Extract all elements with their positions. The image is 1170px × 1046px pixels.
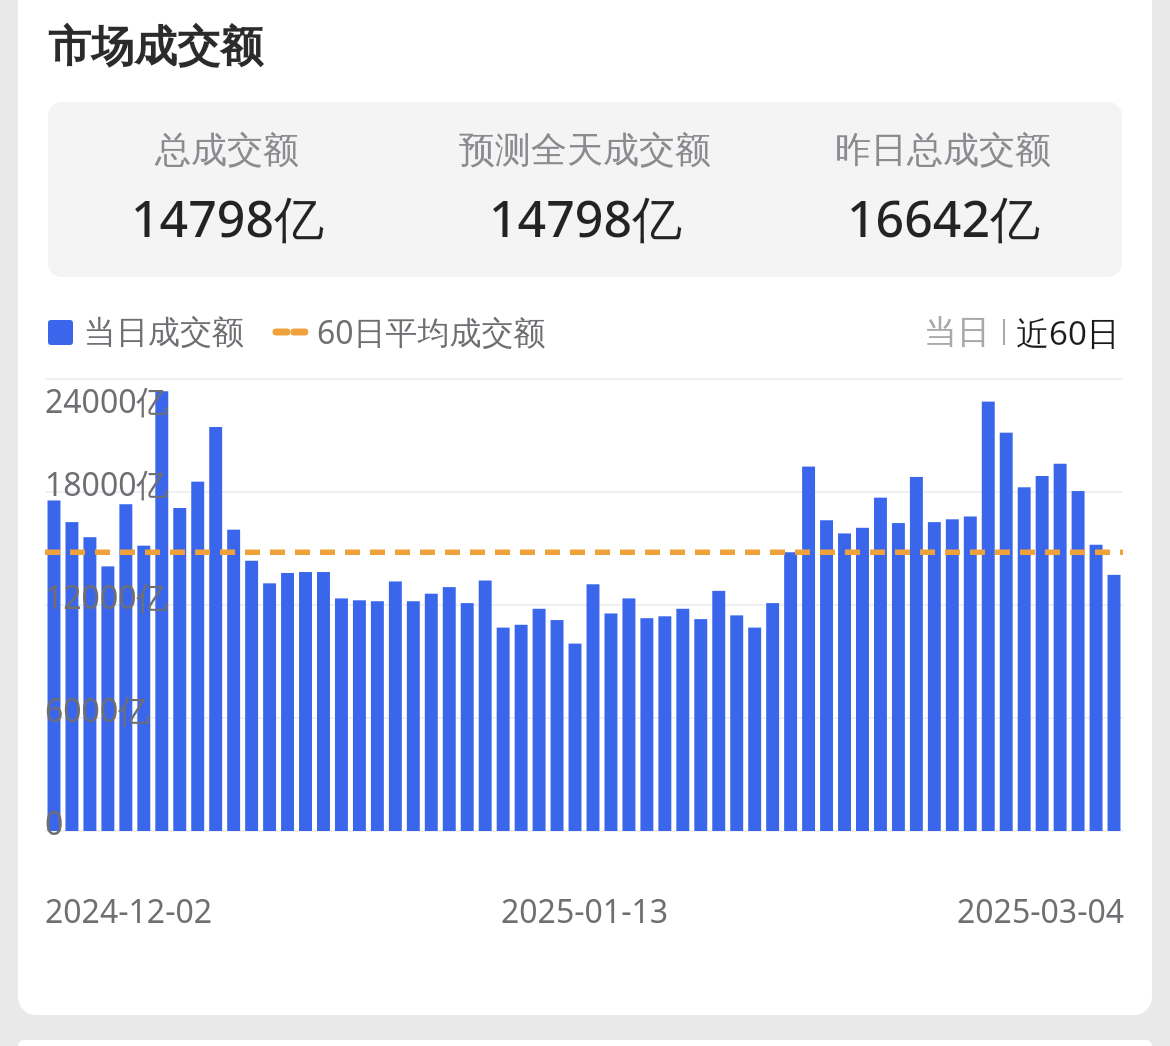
button[interactable]: 昨日总成交额 <box>764 127 1122 252</box>
button[interactable]: 总成交额 <box>48 127 406 252</box>
staticText: 昨日总成交额 <box>835 127 1051 172</box>
staticText: 60日平均成交额 <box>317 310 546 354</box>
staticText: 16642亿 <box>847 184 1040 252</box>
staticText: 当日成交额 <box>84 312 244 352</box>
button[interactable]: 预测全天成交额 <box>406 127 764 252</box>
button[interactable]: 60日平均成交额 <box>276 310 546 354</box>
staticText: 18000亿 <box>45 462 169 506</box>
button[interactable]: 近60日 <box>1014 310 1122 355</box>
staticText: 2024-12-02 <box>45 889 213 933</box>
staticText: 14798亿 <box>489 184 682 252</box>
staticText: 6000亿 <box>45 688 151 732</box>
staticText: 近60日 <box>1016 310 1120 355</box>
staticText: 12000亿 <box>45 575 169 619</box>
button[interactable]: 总成交额 <box>48 102 1122 277</box>
staticText: 24000亿 <box>45 379 169 423</box>
staticText: 14798亿 <box>131 184 324 252</box>
staticText: 当日 <box>924 311 990 353</box>
button[interactable]: 当日成交额 <box>48 312 244 352</box>
staticText: 2025-01-13 <box>501 889 669 933</box>
staticText: 2025-03-04 <box>957 889 1125 933</box>
staticText: 总成交额 <box>155 127 299 172</box>
staticText: 0 <box>45 801 64 845</box>
staticText: 预测全天成交额 <box>459 127 711 172</box>
staticText: 市场成交额 <box>48 20 263 74</box>
button[interactable]: 当日 <box>920 311 994 353</box>
